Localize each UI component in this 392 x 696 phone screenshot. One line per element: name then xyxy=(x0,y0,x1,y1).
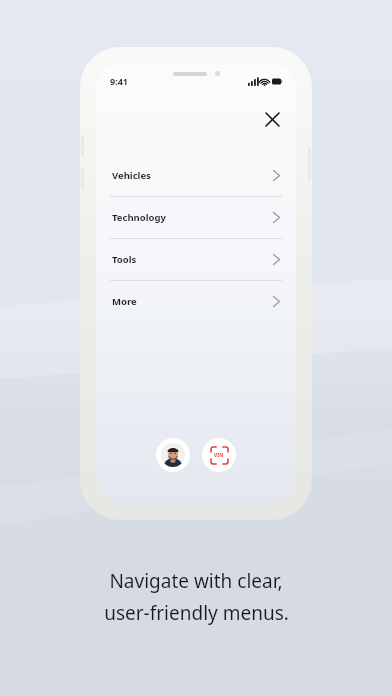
staticText: Tools xyxy=(112,253,137,266)
staticText: Vehicles xyxy=(112,169,151,182)
button[interactable]: Technology xyxy=(96,197,296,238)
staticText: Technology xyxy=(112,211,166,224)
button[interactable]: More xyxy=(96,281,296,322)
button[interactable]: Profile xyxy=(156,438,190,472)
staticText: VIN xyxy=(214,452,224,459)
staticText: Navigate with clear, xyxy=(109,568,283,594)
staticText: user-friendly menus. xyxy=(104,600,289,626)
button[interactable]: Vehicles xyxy=(96,155,296,196)
button[interactable]: Scan VIN xyxy=(202,438,236,472)
staticText: More xyxy=(112,295,137,308)
button[interactable]: Close xyxy=(256,103,288,135)
button[interactable]: Tools xyxy=(96,239,296,280)
staticText: 9:41 xyxy=(110,75,128,87)
